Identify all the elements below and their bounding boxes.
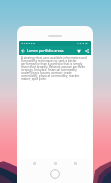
button[interactable]: Recents — [70, 159, 81, 167]
button[interactable]: Share — [83, 46, 91, 55]
staticText: Lorem portfolio areas — [27, 48, 64, 53]
staticText: A strategy that uses available informati… — [21, 56, 88, 81]
button[interactable]: Back — [19, 46, 27, 55]
button[interactable]: Back — [29, 159, 40, 167]
button[interactable]: Favorite — [75, 46, 83, 55]
button[interactable]: Home — [50, 159, 61, 167]
button[interactable]: Home — [50, 169, 60, 179]
